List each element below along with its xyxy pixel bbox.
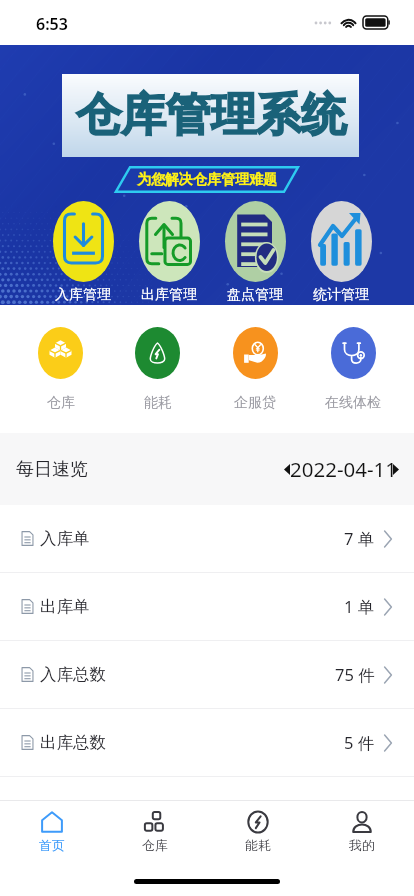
button[interactable]: Next day: [393, 457, 399, 481]
staticText: 入库管理: [55, 286, 111, 304]
button[interactable]: 入库总数: [0, 641, 414, 708]
button[interactable]: 仓库: [103, 811, 206, 853]
button[interactable]: 入库单: [0, 505, 414, 572]
button[interactable]: 首页: [0, 811, 103, 853]
staticText: 5 件: [344, 731, 375, 754]
staticText: 我的: [349, 837, 375, 853]
button[interactable]: 出库管理: [126, 201, 212, 304]
staticText: 仓库: [142, 837, 168, 853]
staticText: 出库总数: [40, 732, 106, 753]
staticText: 仓库管理系统: [76, 87, 346, 144]
button[interactable]: 企服贷: [206, 327, 304, 412]
staticText: 每日速览: [16, 458, 88, 481]
staticText: 75 件: [335, 663, 375, 686]
button[interactable]: 出库单: [0, 573, 414, 640]
button[interactable]: 能耗: [109, 327, 206, 412]
staticText: 入库单: [40, 528, 90, 549]
button[interactable]: 入库管理: [40, 201, 126, 304]
staticText: 入库总数: [40, 664, 106, 685]
staticText: 企服贷: [234, 394, 276, 412]
staticText: 首页: [39, 837, 65, 853]
staticText: 出库管理: [141, 286, 197, 304]
staticText: 盘点管理: [227, 286, 283, 304]
staticText: 2022-04-11: [290, 455, 398, 483]
staticText: 能耗: [245, 837, 271, 853]
staticText: 能耗: [144, 394, 172, 412]
button[interactable]: 能耗: [206, 811, 310, 853]
staticText: 仓库: [47, 394, 75, 412]
button[interactable]: 我的: [310, 811, 414, 853]
staticText: 出库单: [40, 596, 90, 617]
button[interactable]: Previous day: [284, 457, 290, 481]
staticText: 在线体检: [325, 394, 381, 412]
staticText: 6:53: [36, 13, 68, 35]
staticText: 统计管理: [313, 286, 369, 304]
staticText: 1 单: [344, 595, 375, 618]
button[interactable]: 仓库: [12, 327, 109, 412]
staticText: 7 单: [344, 527, 375, 550]
staticText: 为您解决仓库管理难题: [137, 171, 277, 189]
button[interactable]: 在线体检: [304, 327, 402, 412]
button[interactable]: 统计管理: [298, 201, 384, 304]
button[interactable]: 盘点管理: [212, 201, 298, 304]
button[interactable]: 出库总数: [0, 709, 414, 776]
